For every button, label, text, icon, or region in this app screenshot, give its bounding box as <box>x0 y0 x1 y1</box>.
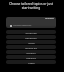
button[interactable]: Featured <box>6 17 56 28</box>
staticText: Ideas <box>28 61 35 64</box>
staticText: Memories <box>25 46 37 49</box>
staticText: Feelings <box>26 56 36 59</box>
staticText: Morning reflection <box>13 24 32 27</box>
button[interactable]: Feelings <box>6 55 56 59</box>
button[interactable]: Gratitude <box>6 30 56 34</box>
staticText: Choose tailored topics or just start wri… <box>6 2 56 10</box>
button[interactable]: Goals <box>6 40 56 44</box>
staticText: Reflection <box>25 36 37 39</box>
button[interactable]: Reflection <box>6 35 56 39</box>
button[interactable]: Memories <box>6 45 56 49</box>
staticText: Goals <box>28 41 35 44</box>
staticText: Dreams <box>26 51 36 54</box>
staticText: Featured <box>45 17 54 20</box>
staticText: Gratitude <box>25 31 37 34</box>
button[interactable]: Ideas <box>6 60 56 64</box>
button[interactable]: Dreams <box>6 50 56 54</box>
